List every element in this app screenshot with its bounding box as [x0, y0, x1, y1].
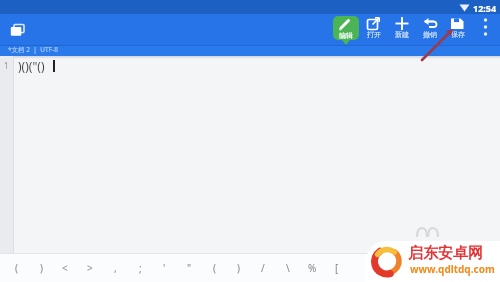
- button[interactable]: ;: [130, 257, 150, 279]
- staticText: 1: [4, 60, 9, 71]
- staticText: ;: [139, 261, 142, 275]
- button[interactable]: 撤销: [416, 17, 443, 39]
- button[interactable]: /: [253, 257, 273, 279]
- button[interactable]: 打开: [360, 17, 387, 39]
- staticText: 编辑: [339, 31, 353, 40]
- staticText: <: [62, 261, 68, 275]
- button[interactable]: >: [80, 257, 100, 279]
- staticText: [: [335, 261, 339, 275]
- button[interactable]: <: [55, 257, 75, 279]
- staticText: \: [286, 261, 290, 275]
- staticText: )()("(): [18, 58, 45, 74]
- staticText: 启东安卓网: [408, 244, 483, 263]
- button[interactable]: 保存: [444, 17, 471, 39]
- staticText: ): [237, 261, 240, 275]
- button[interactable]: ': [154, 257, 174, 279]
- button[interactable]: %: [302, 257, 322, 279]
- button[interactable]: [: [327, 257, 347, 279]
- button[interactable]: [478, 16, 493, 40]
- staticText: ): [40, 261, 43, 275]
- button[interactable]: 新建: [388, 17, 415, 39]
- button[interactable]: 编辑: [333, 16, 359, 45]
- button[interactable]: ): [31, 257, 51, 279]
- staticText: (: [15, 261, 18, 275]
- button[interactable]: ,: [105, 257, 125, 279]
- staticText: ': [163, 261, 166, 275]
- staticText: >: [87, 261, 93, 275]
- staticText: ,: [114, 261, 117, 275]
- button[interactable]: ": [179, 257, 199, 279]
- staticText: 保存: [451, 30, 465, 39]
- button[interactable]: (: [204, 257, 224, 279]
- staticText: 打开: [367, 30, 381, 39]
- staticText: 12:54: [473, 2, 497, 14]
- button[interactable]: (: [6, 257, 26, 279]
- staticText: (: [213, 261, 216, 275]
- staticText: www.qdltdq.com: [410, 262, 495, 276]
- staticText: ": [187, 261, 192, 275]
- staticText: /: [261, 261, 265, 275]
- staticText: *文档 2 | UTF-8: [8, 45, 58, 54]
- button[interactable]: [10, 24, 25, 37]
- staticText: 新建: [395, 30, 409, 39]
- button[interactable]: ): [228, 257, 248, 279]
- staticText: 撤销: [423, 30, 437, 39]
- button[interactable]: \: [278, 257, 298, 279]
- staticText: %: [308, 261, 317, 275]
